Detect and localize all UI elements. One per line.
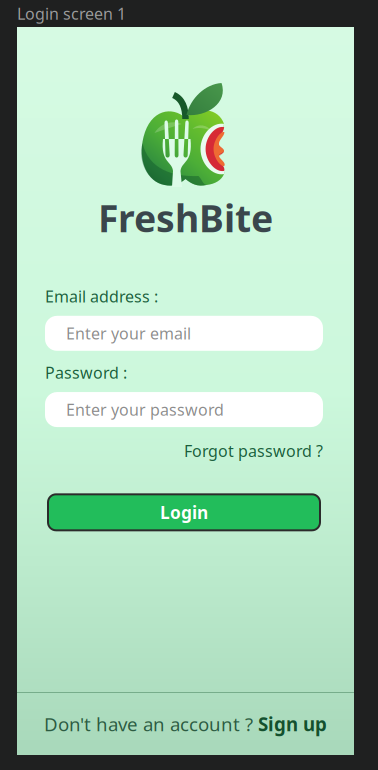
staticText: Forgot password ? xyxy=(184,440,323,461)
staticText: Don't have an account ? xyxy=(44,712,258,736)
staticText: Enter your password xyxy=(66,399,224,420)
button[interactable]: Sign up xyxy=(258,712,327,736)
staticText: FreshBite xyxy=(98,193,273,243)
staticText: Sign up xyxy=(258,712,327,736)
button[interactable]: Enter your email xyxy=(45,316,323,351)
staticText: Enter your email xyxy=(66,323,191,344)
button[interactable]: Login xyxy=(45,494,323,530)
button[interactable]: Enter your password xyxy=(45,392,323,427)
button[interactable]: Forgot password ? xyxy=(45,440,323,461)
staticText: Login screen 1 xyxy=(17,3,126,24)
staticText: Login xyxy=(160,501,208,524)
staticText: Email address : xyxy=(45,286,158,307)
staticText: Password : xyxy=(45,362,127,383)
